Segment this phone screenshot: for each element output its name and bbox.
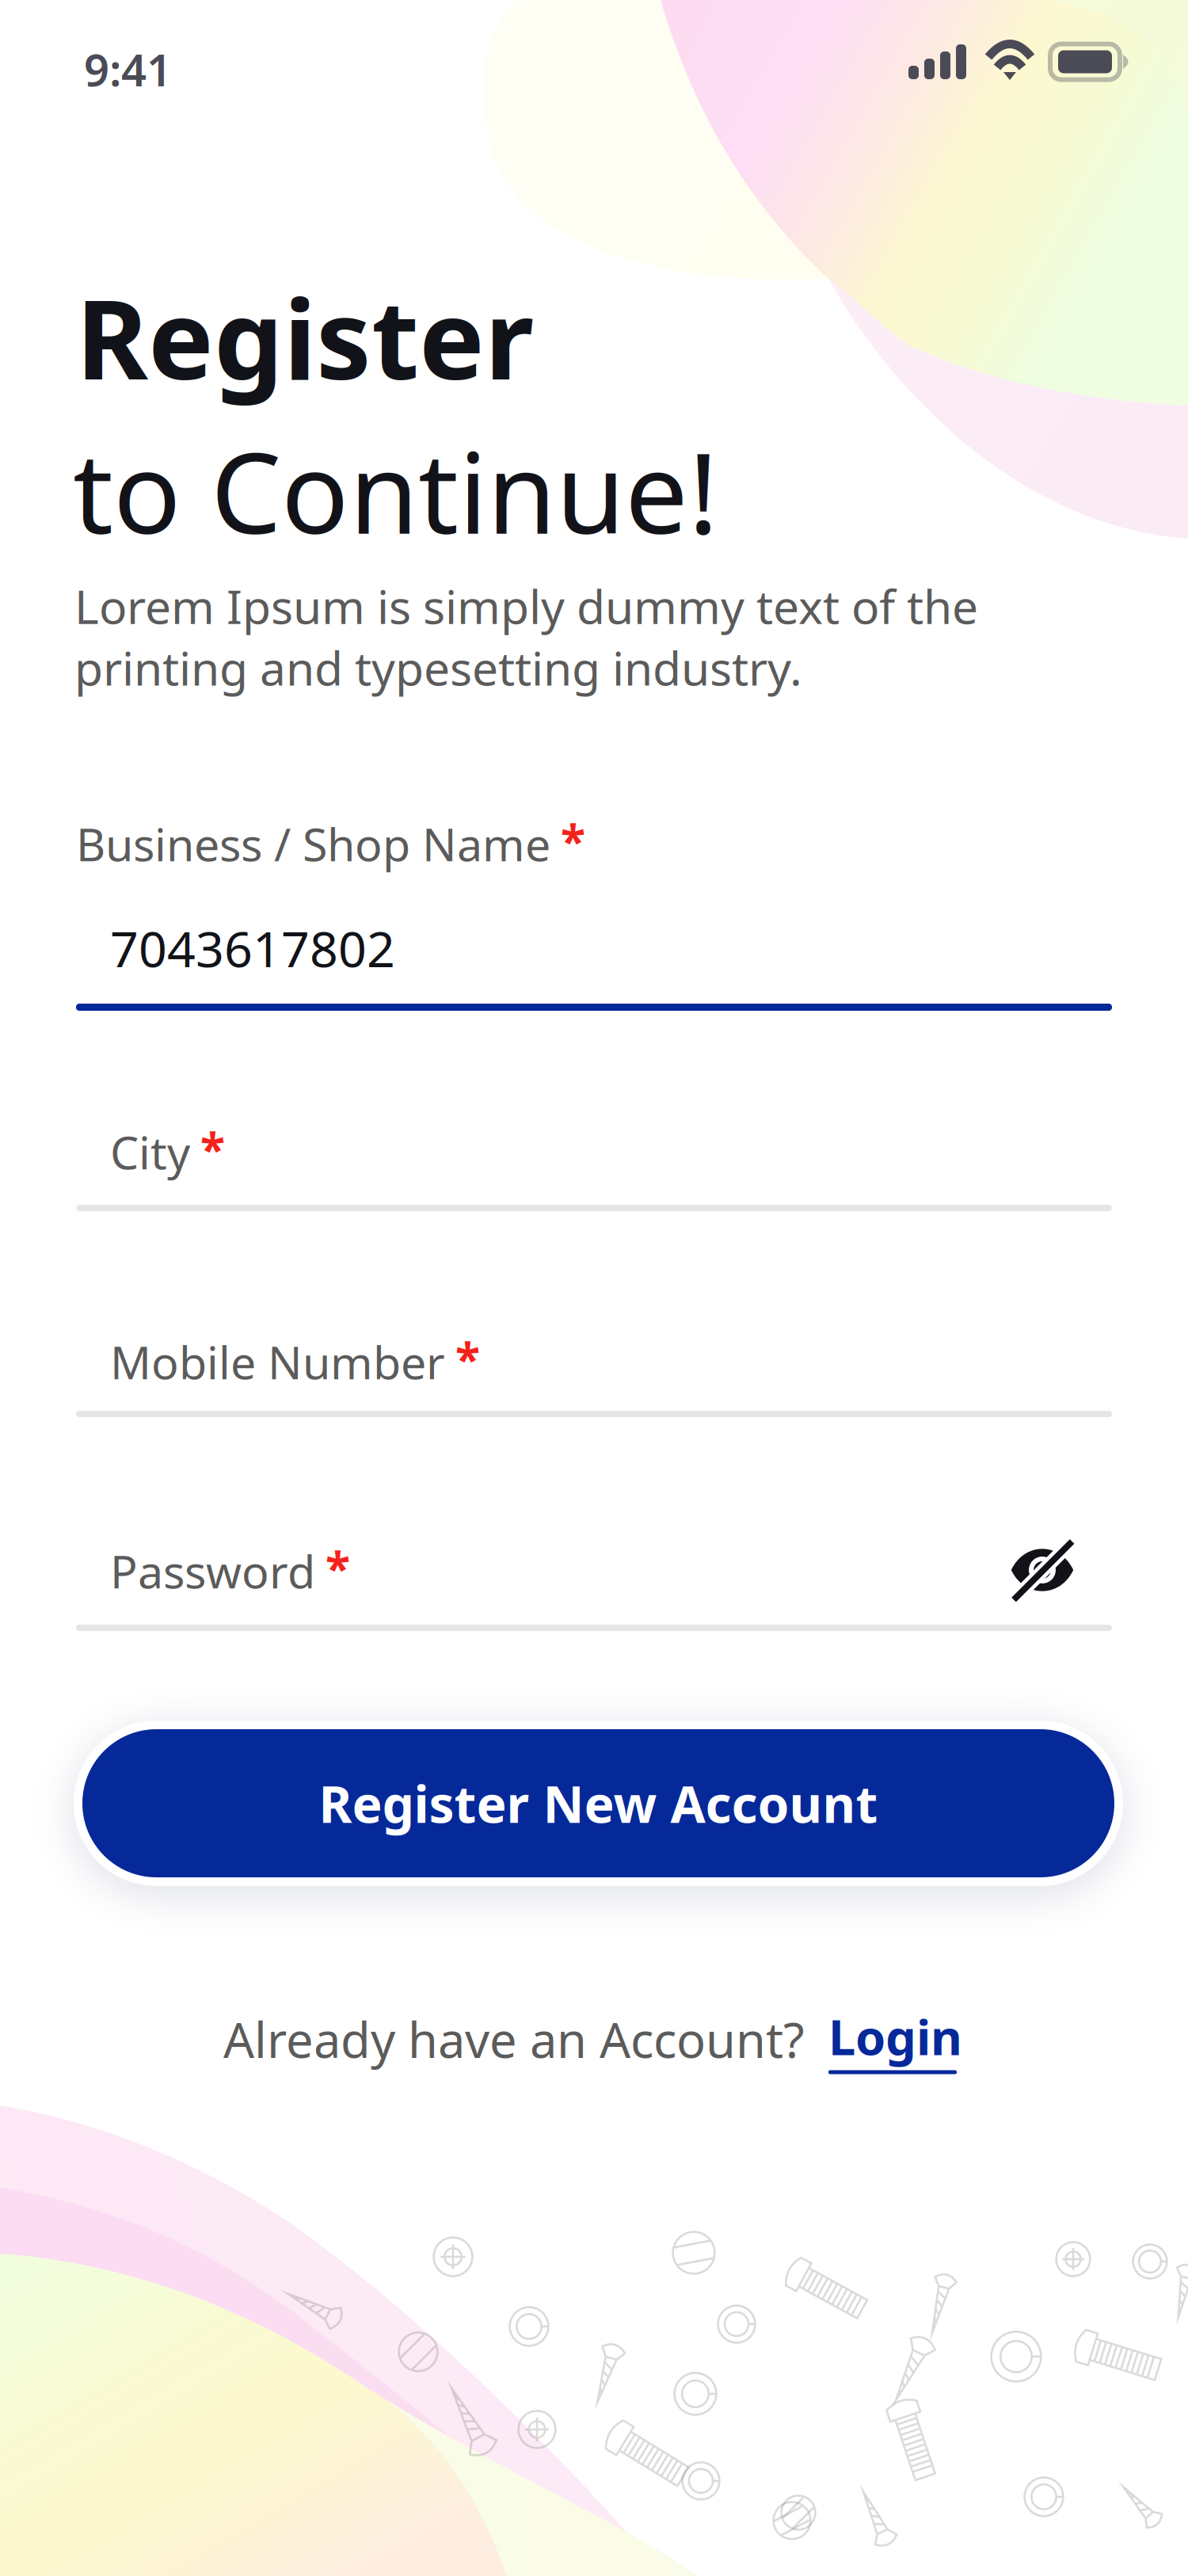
staticText: City [110, 1122, 190, 1182]
button[interactable]: Show password [993, 1521, 1091, 1619]
staticText: * [200, 1118, 225, 1179]
staticText: Business / Shop Name [76, 814, 550, 874]
staticText: Register [76, 264, 534, 410]
staticText: Login [828, 2004, 962, 2069]
button[interactable]: Register New Account [74, 1721, 1123, 1886]
staticText: Already have an Account? [223, 2007, 805, 2071]
staticText: Password [110, 1541, 315, 1601]
staticText: Mobile Number [110, 1332, 445, 1392]
staticText: 7043617802 [110, 915, 395, 981]
staticText: * [326, 1538, 350, 1598]
staticText: to Continue! [73, 416, 718, 565]
staticText: Lorem Ipsum is simply dummy text of the … [74, 575, 978, 698]
staticText: * [455, 1328, 480, 1389]
staticText: * [561, 810, 585, 871]
button[interactable]: Login [828, 2004, 962, 2074]
staticText: Register New Account [319, 1770, 878, 1837]
staticText: 9:41 [84, 40, 172, 99]
